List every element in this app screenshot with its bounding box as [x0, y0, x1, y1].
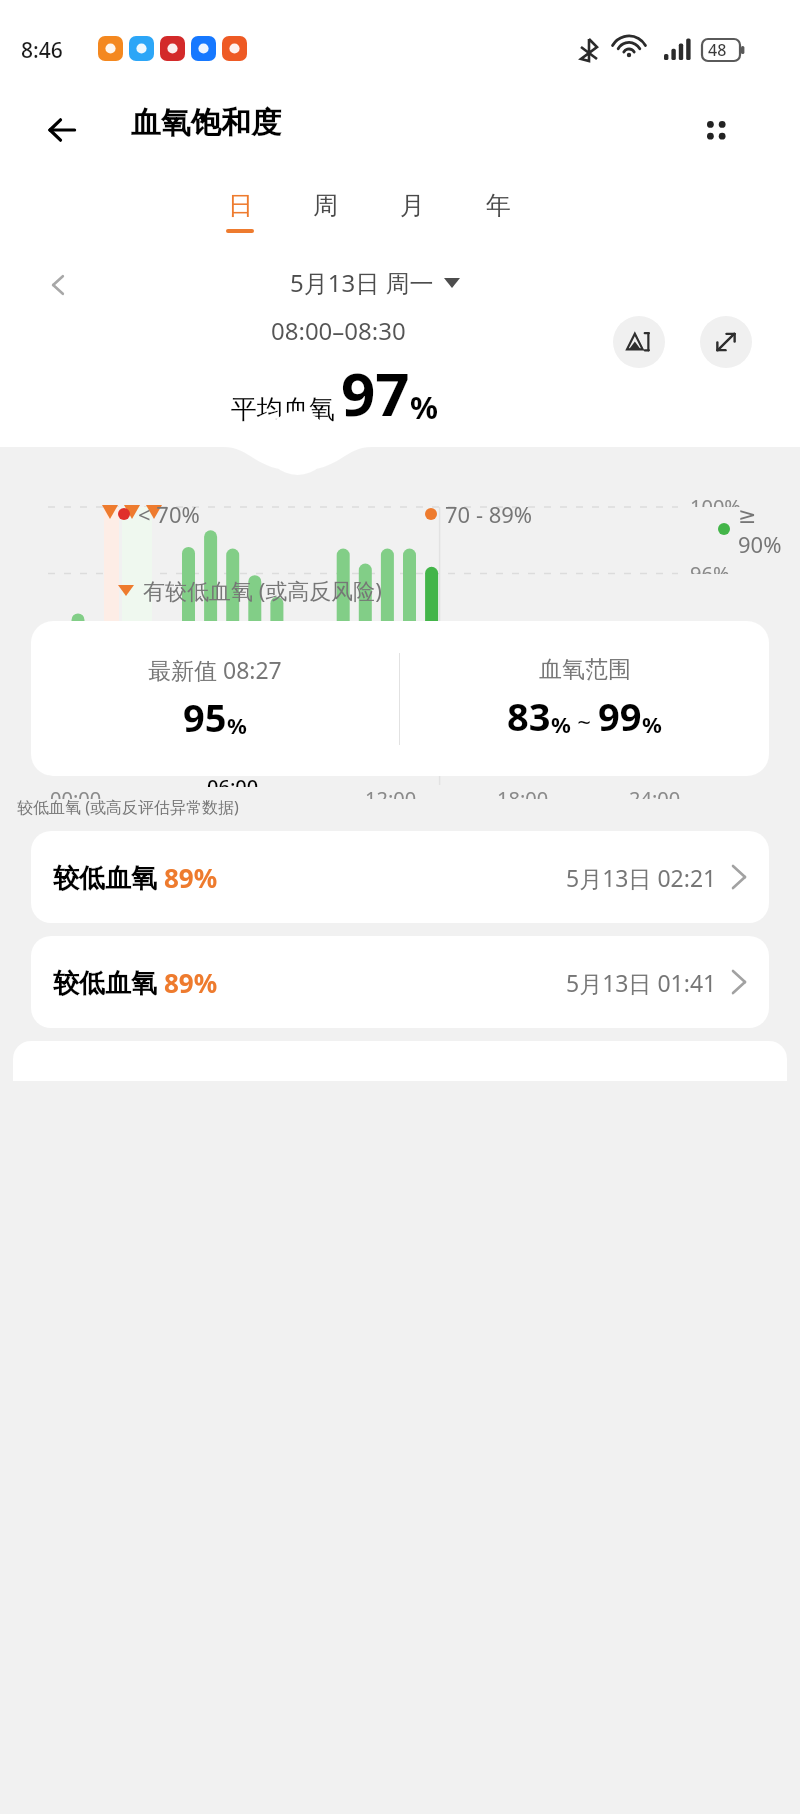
staticText: 血氧饱和度 — [131, 104, 281, 142]
staticText: 89% — [164, 965, 218, 1000]
staticText: 95 — [183, 691, 227, 743]
staticText: 89% — [164, 860, 218, 895]
button[interactable]: 月 — [382, 190, 442, 248]
button[interactable]: 周 — [295, 190, 355, 248]
button[interactable]: More options — [690, 104, 742, 156]
staticText: 较低血氧 — [53, 964, 164, 1000]
staticText: 18:00 — [497, 785, 549, 799]
staticText: < 70% — [138, 499, 200, 529]
staticText: 08:00–08:30 — [271, 314, 406, 347]
staticText: 96% — [690, 560, 730, 574]
button[interactable]: Expand — [700, 316, 752, 368]
button[interactable]: 5月13日 周一 — [290, 266, 460, 299]
staticText: 血氧范围 — [539, 655, 631, 684]
staticText: 8:46 — [21, 36, 63, 65]
staticText: 月 — [400, 190, 425, 221]
staticText: 00:00 — [50, 785, 102, 799]
staticText: 70 - 89% — [445, 499, 533, 529]
staticText: 97 — [341, 352, 410, 434]
staticText: ≥ 90% — [738, 499, 800, 559]
button[interactable]: Back — [36, 104, 88, 156]
staticText: % — [642, 709, 662, 739]
staticText: 06:00 — [207, 773, 259, 787]
staticText: ~ — [571, 705, 598, 738]
button[interactable]: Previous day — [34, 262, 82, 308]
staticText: 周 — [313, 190, 338, 221]
button[interactable]: Measure — [613, 316, 665, 368]
staticText: % — [227, 710, 247, 740]
staticText: 较低血氧 — [53, 859, 164, 895]
button[interactable]: 较低血氧 — [31, 936, 769, 1028]
button[interactable]: 日 — [210, 190, 270, 248]
button[interactable]: 年 — [468, 190, 528, 248]
staticText: 有较低血氧 (或高反风险) — [143, 575, 382, 605]
staticText: 48 — [708, 39, 727, 61]
staticText: 平均血氧 — [231, 393, 335, 426]
staticText: 5月13日 02:21 — [566, 862, 717, 893]
staticText: 5月13日 01:41 — [566, 967, 717, 998]
staticText: 较低血氧 (或高反评估异常数据) — [17, 796, 239, 818]
staticText: % — [410, 386, 438, 428]
staticText: 100% — [690, 493, 741, 507]
button[interactable]: 最新值 08:27 — [31, 621, 769, 776]
staticText: 日 — [228, 190, 253, 221]
button[interactable]: 较低血氧 — [31, 831, 769, 923]
staticText: 年 — [486, 190, 511, 221]
staticText: 最新值 08:27 — [148, 654, 282, 685]
staticText: 5月13日 周一 — [290, 266, 434, 299]
staticText: % — [551, 709, 571, 739]
staticText: 99 — [598, 690, 642, 742]
staticText: 12:00 — [365, 785, 417, 799]
staticText: 83 — [507, 690, 551, 742]
staticText: 24:00 — [629, 785, 681, 799]
